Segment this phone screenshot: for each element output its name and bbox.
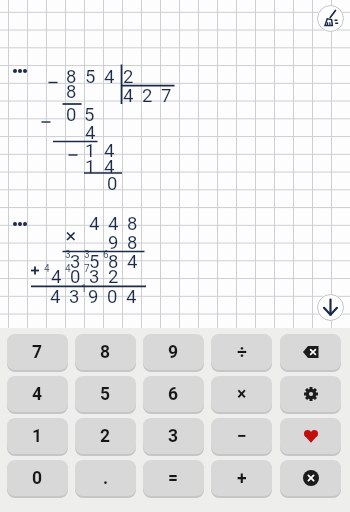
staticText: ÷ (237, 342, 247, 363)
staticText: 4 (123, 85, 134, 107)
button[interactable] (280, 376, 341, 412)
button[interactable]: 9 (143, 334, 204, 370)
staticText: . (103, 468, 109, 489)
staticText: 8 (66, 66, 77, 88)
staticText: 5 (85, 66, 96, 88)
staticText: 3 (65, 249, 71, 261)
staticText: 0 (107, 286, 118, 308)
staticText: 7 (161, 85, 172, 107)
staticText: 4 (50, 286, 61, 308)
button[interactable]: = (143, 460, 204, 496)
button[interactable]: 3 (143, 418, 204, 454)
staticText: 4 (85, 122, 96, 144)
staticText: 4 (51, 266, 62, 288)
staticText: 3 (69, 286, 80, 308)
button[interactable] (280, 460, 341, 496)
staticText: 2 (100, 426, 111, 447)
staticText: 0 (70, 266, 81, 288)
staticText: 2 (123, 66, 134, 88)
button[interactable]: 6 (143, 376, 204, 412)
staticText: 2 (142, 85, 153, 107)
staticText: 8 (100, 342, 111, 363)
staticText: 4 (126, 286, 137, 308)
staticText: 4 (89, 213, 100, 235)
staticText: 4 (65, 263, 71, 275)
staticText: 2 (108, 266, 119, 288)
button[interactable] (317, 5, 344, 32)
staticText: 4 (108, 213, 119, 235)
staticText: 5 (100, 384, 111, 405)
staticText: 4 (104, 156, 115, 178)
button[interactable] (280, 418, 341, 454)
staticText: 4 (44, 263, 50, 275)
button[interactable]: + (211, 460, 272, 496)
button[interactable]: 7 (7, 334, 68, 370)
staticText: 3 (84, 249, 90, 261)
staticText: 7 (32, 342, 43, 363)
button[interactable]: × (211, 376, 272, 412)
staticText: 9 (108, 232, 119, 254)
staticText: 4 (32, 384, 43, 405)
staticText: 3 (70, 251, 81, 273)
button[interactable]: 1 (7, 418, 68, 454)
button[interactable]: 4 (7, 376, 68, 412)
button[interactable] (317, 294, 344, 321)
staticText: 5 (89, 251, 100, 273)
staticText: 3 (89, 266, 100, 288)
staticText: 8 (127, 213, 138, 235)
staticText: 9 (168, 342, 179, 363)
button[interactable]: 5 (75, 376, 136, 412)
button[interactable]: 0 (7, 460, 68, 496)
staticText: 8 (66, 81, 77, 103)
staticText: × (237, 384, 247, 405)
staticText: 1 (32, 426, 43, 447)
staticText: 7 (84, 263, 90, 275)
button[interactable] (280, 334, 341, 370)
button[interactable] (8, 214, 32, 234)
button[interactable]: − (211, 418, 272, 454)
staticText: 0 (32, 468, 43, 489)
staticText: 5 (84, 104, 95, 126)
staticText: 4 (104, 66, 115, 88)
button[interactable]: 2 (75, 418, 136, 454)
staticText: 3 (168, 426, 179, 447)
staticText: 0 (66, 104, 77, 126)
staticText: 1 (85, 156, 96, 178)
staticText: 8 (127, 232, 138, 254)
staticText: 1 (85, 140, 96, 162)
button[interactable] (8, 61, 32, 81)
button[interactable]: 8 (75, 334, 136, 370)
staticText: 0 (107, 173, 118, 195)
button[interactable]: . (75, 460, 136, 496)
staticText: 8 (108, 251, 119, 273)
staticText: 4 (127, 251, 138, 273)
staticText: + (237, 468, 247, 489)
staticText: = (168, 468, 179, 489)
staticText: 6 (168, 384, 179, 405)
staticText: 1 (81, 283, 87, 295)
staticText: − (237, 426, 247, 447)
staticText: 9 (88, 286, 99, 308)
button[interactable]: ÷ (211, 334, 272, 370)
staticText: 6 (103, 249, 109, 261)
staticText: 4 (104, 140, 115, 162)
